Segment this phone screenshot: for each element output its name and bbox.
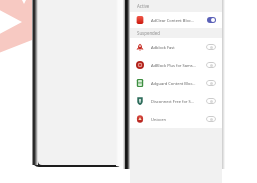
- button[interactable]: AdBlock Plus for Samsung Inte: [130, 56, 222, 74]
- button[interactable]: Disable content blocker: [207, 17, 216, 23]
- button[interactable]: AdClear Content Blocker: [130, 12, 222, 28]
- button[interactable]: Adguard Content Blocker: [130, 74, 222, 92]
- staticText: Unicorn: [151, 117, 196, 122]
- button[interactable]: Enable content blocker: [206, 44, 216, 50]
- staticText: Adguard Content Blocker: [151, 81, 196, 86]
- button[interactable]: Adblock Fast: [130, 38, 222, 56]
- button[interactable]: Disconnect Free for Samsung B: [130, 92, 222, 110]
- button[interactable]: Enable content blocker: [206, 116, 216, 122]
- staticText: AdClear Content Blocker: [151, 18, 196, 23]
- button[interactable]: Enable content blocker: [206, 62, 216, 68]
- staticText: Adblock Fast: [151, 45, 196, 50]
- button[interactable]: Unicorn: [130, 110, 222, 128]
- staticText: Suspended: [137, 30, 160, 36]
- staticText: AdBlock Plus for Samsung Inte: [151, 63, 196, 68]
- staticText: Active: [137, 3, 150, 9]
- button[interactable]: Enable content blocker: [206, 98, 216, 104]
- button[interactable]: Enable content blocker: [206, 80, 216, 86]
- staticText: Disconnect Free for Samsung B: [151, 99, 196, 104]
